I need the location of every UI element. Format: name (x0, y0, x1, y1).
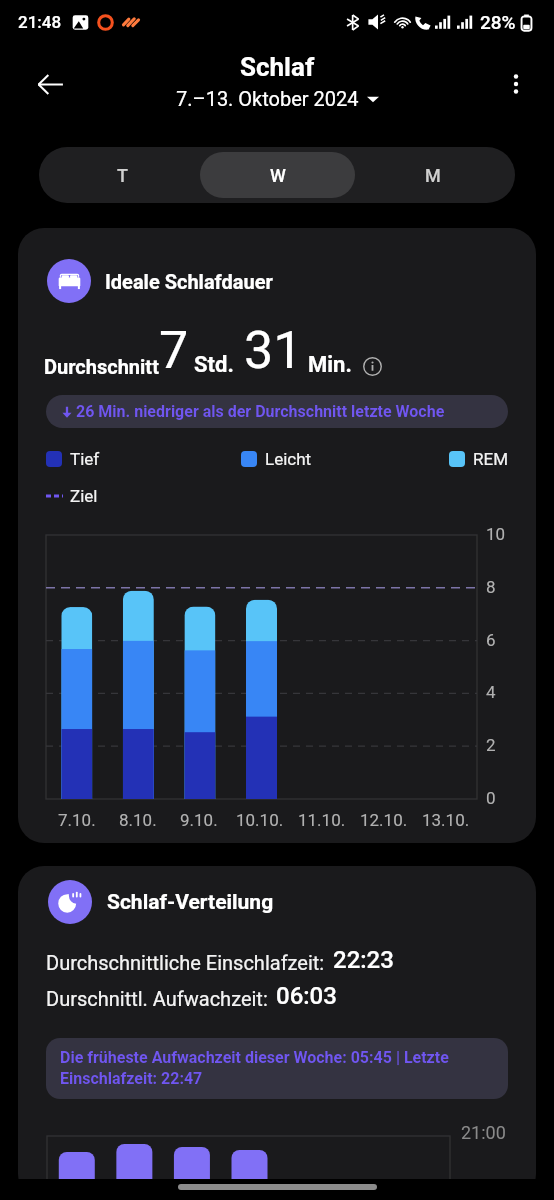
staticText: REM (473, 449, 508, 469)
staticText: Durschnittl. Aufwachzeit: (46, 987, 268, 1010)
button[interactable]: More options (494, 62, 538, 106)
button[interactable]: 7.–13. Oktober 2024 (176, 87, 379, 110)
staticText: Ideale Schlafdauer (105, 270, 273, 293)
staticText: 7.–13. Oktober 2024 (176, 87, 359, 110)
staticText: 10.10. (236, 810, 284, 830)
staticText: 6 (486, 630, 496, 650)
other: Info (363, 357, 382, 376)
button[interactable]: Ideale Schlafdauer (18, 228, 536, 843)
staticText: Tief (70, 449, 100, 469)
staticText: Schlaf-Verteilung (107, 890, 274, 915)
staticText: 11.10. (298, 810, 346, 830)
staticText: Ziel (70, 486, 98, 506)
button[interactable]: Schlaf-Verteilung (18, 866, 536, 1200)
button[interactable]: M (355, 152, 510, 198)
button[interactable]: REM (449, 449, 508, 469)
staticText: 22:23 (333, 946, 394, 974)
staticText: 8 (486, 577, 496, 597)
staticText: 21:48 (18, 12, 62, 32)
staticText: 10 (486, 524, 506, 544)
staticText: Leicht (265, 449, 312, 469)
staticText: Durchschnittliche Einschlafzeit: (46, 951, 325, 974)
staticText: 7.10. (58, 810, 96, 830)
staticText: Die früheste Aufwachzeit dieser Woche: 0… (60, 1048, 494, 1088)
staticText: W (270, 165, 286, 186)
button[interactable]: Tief (46, 449, 100, 469)
button[interactable]: W (200, 152, 355, 198)
staticText: 21:00 (461, 1122, 506, 1143)
staticText: 06:03 (276, 982, 337, 1010)
staticText: 0 (486, 788, 496, 808)
staticText: 9.10. (180, 810, 218, 830)
button[interactable]: Back (26, 60, 74, 108)
staticText: 26 Min. niedriger als der Durchschnitt l… (76, 402, 445, 421)
staticText: 2 (486, 735, 496, 755)
staticText: Schlaf (240, 52, 315, 82)
staticText: 4 (486, 682, 496, 702)
staticText: Std. (194, 352, 234, 378)
staticText: 12.10. (360, 810, 408, 830)
staticText: 8.10. (119, 810, 157, 830)
staticText: 7 (159, 320, 189, 381)
staticText: T (117, 165, 128, 186)
staticText: Min. (308, 352, 352, 378)
staticText: 28% (480, 11, 516, 33)
button[interactable]: Leicht (241, 449, 312, 469)
staticText: M (425, 165, 441, 186)
staticText: 31 (244, 320, 303, 381)
staticText: Durchschnitt (44, 355, 159, 378)
staticText: 13.10. (422, 810, 470, 830)
button[interactable]: T (44, 152, 200, 198)
